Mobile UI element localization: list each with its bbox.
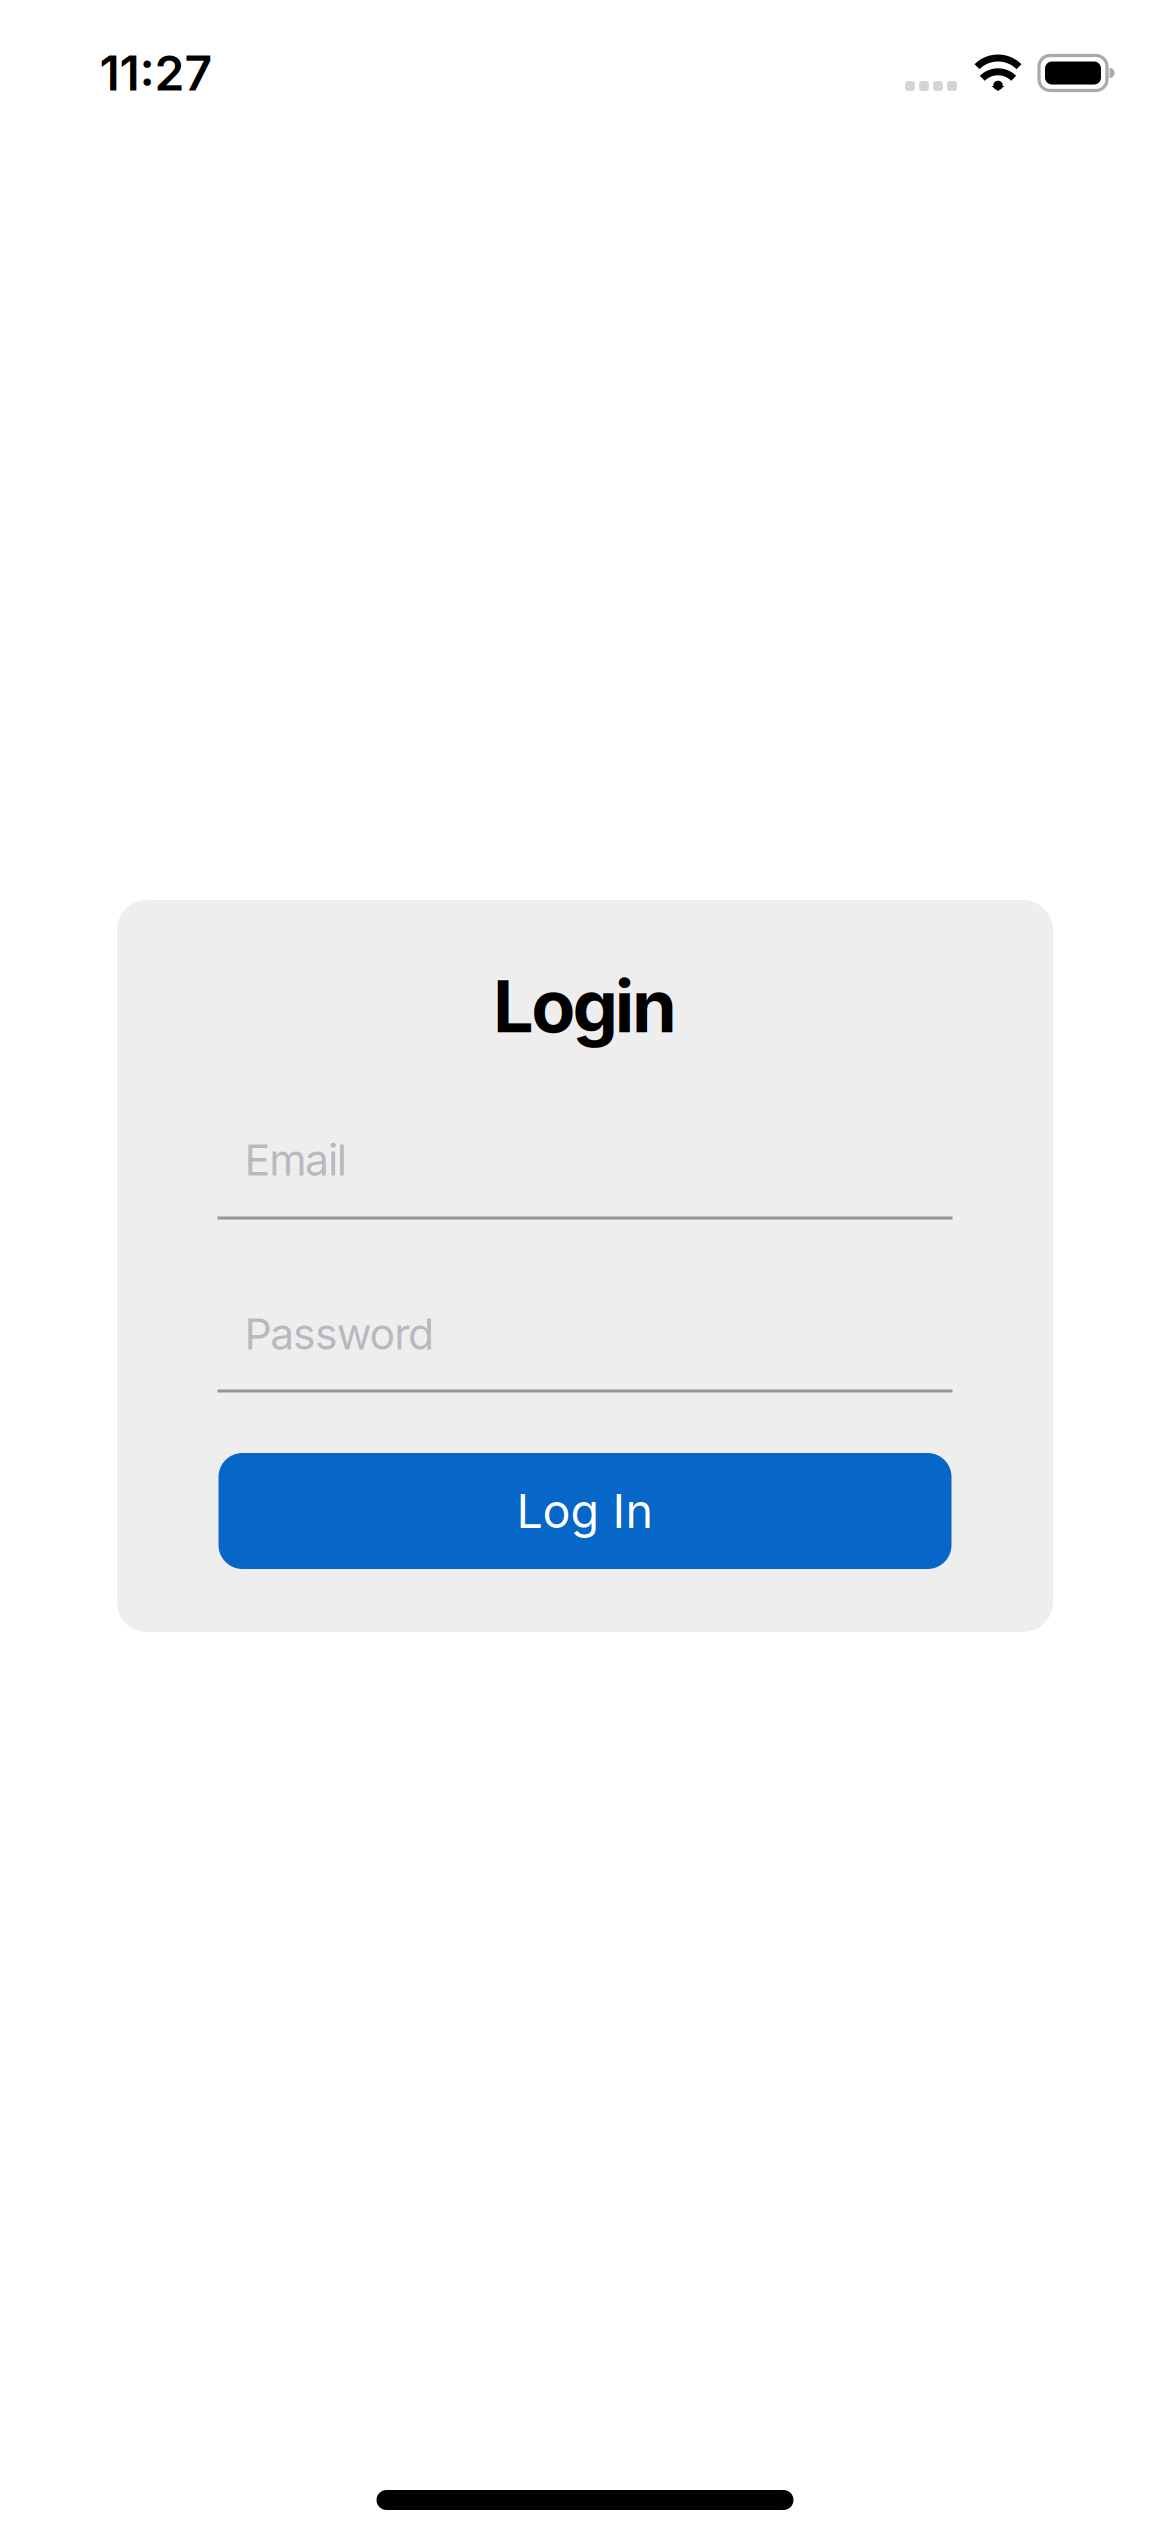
staticText: Log In (516, 1483, 653, 1539)
button[interactable]: Log In (218, 1453, 951, 1569)
secureTextField[interactable]: Password (217, 1309, 952, 1359)
staticText: Email (244, 1135, 347, 1185)
staticText: 11:27 (99, 45, 212, 101)
staticText: Login (493, 963, 677, 1048)
textField[interactable]: Email (217, 1135, 952, 1185)
staticText: Password (244, 1309, 434, 1359)
